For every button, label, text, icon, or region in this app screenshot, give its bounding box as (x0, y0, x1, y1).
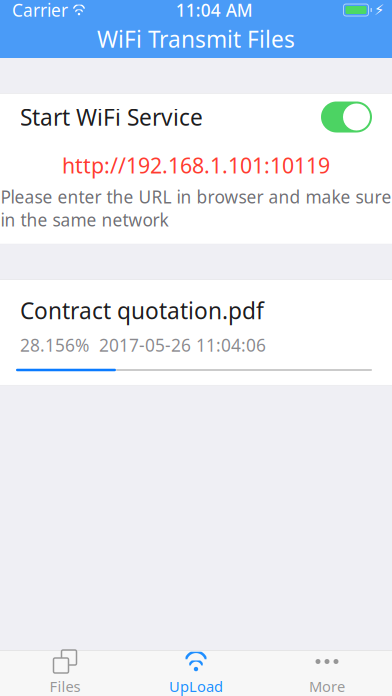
staticText: Files (49, 676, 80, 696)
staticText: Start WiFi Service (20, 102, 203, 132)
button[interactable]: More (262, 651, 392, 696)
button[interactable]: Start WiFi Service (0, 93, 392, 141)
staticText: Please enter the URL in browser and make… (0, 185, 391, 231)
staticText: 11:04 AM (176, 0, 253, 21)
staticText: http://192.168.1.101:10119 (62, 151, 330, 179)
button[interactable]: UpLoad (130, 651, 262, 696)
staticText: WiFi Transmit Files (97, 24, 295, 54)
staticText: 2017-05-26 11:04:06 (99, 333, 266, 356)
button[interactable]: Contract quotation.pdf (0, 279, 392, 385)
staticText: Carrier (12, 0, 68, 21)
staticText: UpLoad (169, 676, 223, 696)
staticText: Contract quotation.pdf (20, 295, 264, 325)
staticText: More (309, 676, 345, 696)
staticText: ⚡︎ (374, 2, 384, 18)
staticText: 28.156% (20, 333, 89, 356)
button[interactable]: Files (0, 651, 130, 696)
